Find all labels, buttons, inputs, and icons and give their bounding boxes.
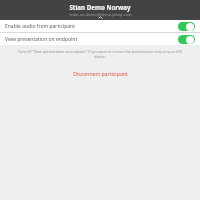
staticText: View presentation on endpoint [5, 36, 78, 43]
button[interactable]: Enable audio from participant [0, 20, 200, 32]
button[interactable]: Collapse details [98, 16, 103, 19]
button[interactable]: Disconnect participant [63, 68, 138, 79]
staticText: Turn off "View presentation on endpoint"… [14, 49, 186, 59]
staticText: Disconnect participant [73, 70, 128, 77]
button[interactable]: View presentation on endpoint [0, 33, 200, 45]
button[interactable]: Toggle on [178, 22, 195, 31]
button[interactable]: Toggle on [178, 35, 195, 44]
staticText: stian-no-demo@demo.pexip.com [69, 12, 132, 17]
staticText: Stian Demo Norway [69, 3, 131, 11]
staticText: Enable audio from participant [5, 23, 75, 30]
